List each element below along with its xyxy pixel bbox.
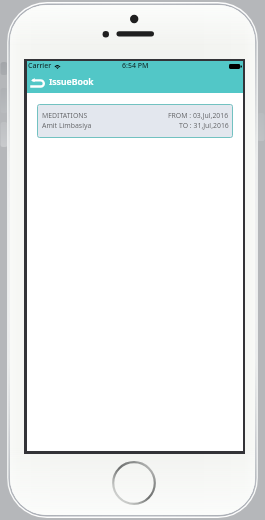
staticText: FROM : 03,Jul,2016 (168, 111, 229, 120)
staticText: MEDITATIONS (42, 111, 88, 120)
staticText: TO : 31,Jul,2016 (179, 121, 229, 130)
button[interactable]: MEDITATIONS (37, 104, 233, 138)
staticText: Carrier (28, 61, 52, 71)
button[interactable]: Back (29, 74, 47, 91)
staticText: Amit Limbasiya (42, 121, 92, 130)
staticText: IssueBook (49, 76, 94, 88)
staticText: 6:54 PM (122, 61, 149, 71)
